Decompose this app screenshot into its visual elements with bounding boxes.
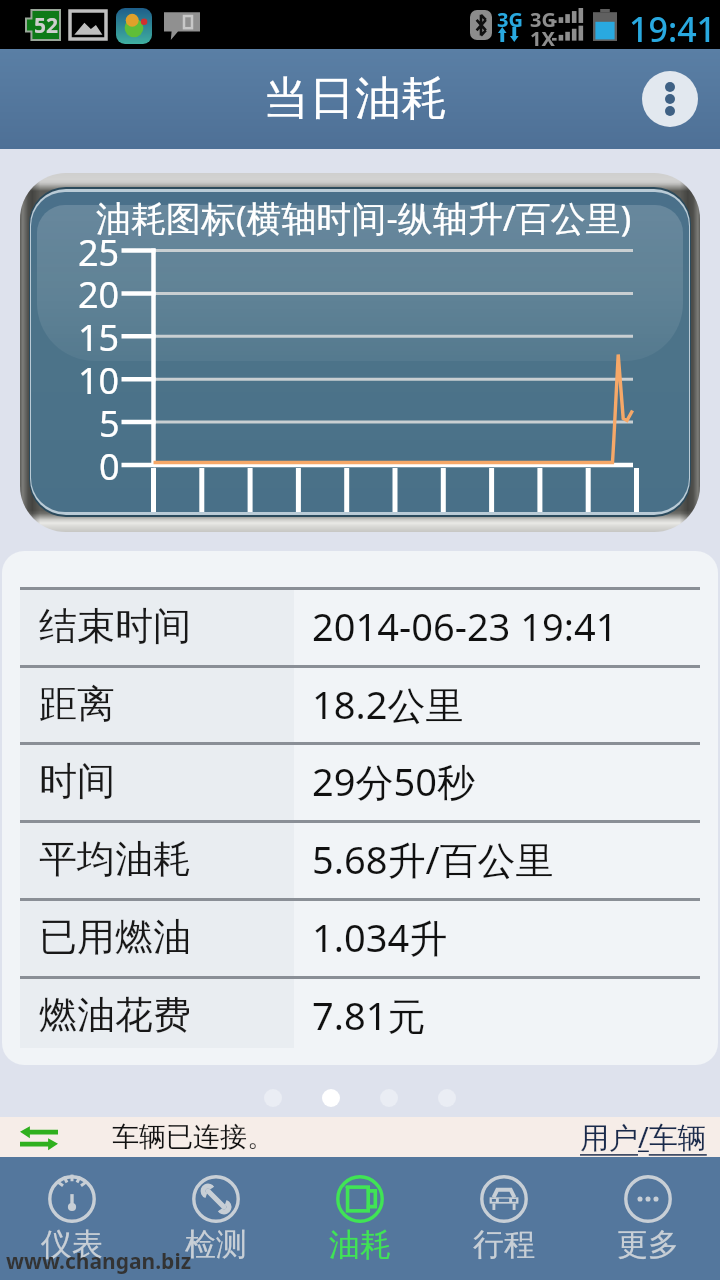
button[interactable]: 结束时间: [2, 587, 718, 664]
staticText: 7.81元: [312, 989, 426, 1041]
button[interactable]: 平均油耗: [2, 820, 718, 897]
staticText: 已用燃油: [39, 913, 191, 961]
staticText: 油耗图标(横轴时间-纵轴升/百公里): [96, 194, 632, 242]
staticText: 52: [34, 11, 59, 40]
staticText: 燃油花费: [39, 991, 191, 1039]
button[interactable]: More options: [642, 71, 698, 127]
button[interactable]: 更多: [576, 1157, 720, 1280]
staticText: 更多: [617, 1225, 679, 1264]
button[interactable]: 检测: [144, 1157, 288, 1280]
button[interactable]: 仪表: [0, 1157, 144, 1280]
staticText: 18.2公里: [312, 678, 464, 730]
staticText: 5.68升/百公里: [312, 833, 554, 885]
staticText: 25: [78, 228, 120, 274]
staticText: 车辆已连接。: [112, 1120, 274, 1154]
staticText: 用户/车辆: [580, 1117, 707, 1157]
staticText: 20: [78, 270, 120, 316]
staticText: 1X: [530, 25, 555, 52]
staticText: 仪表: [41, 1225, 103, 1264]
button[interactable]: 油耗: [288, 1157, 432, 1280]
staticText: 3G: [530, 6, 556, 33]
staticText: 15: [78, 313, 120, 359]
staticText: 行程: [473, 1225, 535, 1264]
staticText: 29分50秒: [312, 755, 475, 807]
staticText: 1.034升: [312, 911, 448, 963]
button[interactable]: 距离: [2, 665, 718, 742]
staticText: 19:41: [629, 6, 717, 52]
staticText: 3G: [497, 6, 523, 33]
staticText: 平均油耗: [39, 835, 191, 883]
staticText: 检测: [185, 1225, 247, 1264]
button[interactable]: 时间: [2, 742, 718, 819]
staticText: 10: [78, 356, 120, 402]
button[interactable]: 行程: [432, 1157, 576, 1280]
staticText: 0: [99, 442, 120, 488]
staticText: 5: [99, 399, 120, 445]
button[interactable]: 燃油花费: [2, 976, 718, 1053]
button[interactable]: 已用燃油: [2, 898, 718, 975]
staticText: 距离: [39, 680, 115, 728]
staticText: 油耗: [329, 1225, 391, 1264]
staticText: 当日油耗: [263, 70, 447, 128]
staticText: 2014-06-23 19:41: [312, 600, 618, 652]
staticText: www.changan.biz: [6, 1247, 192, 1276]
button[interactable]: 用户/车辆: [580, 1117, 707, 1157]
staticText: 结束时间: [39, 602, 191, 650]
staticText: 时间: [39, 757, 115, 805]
